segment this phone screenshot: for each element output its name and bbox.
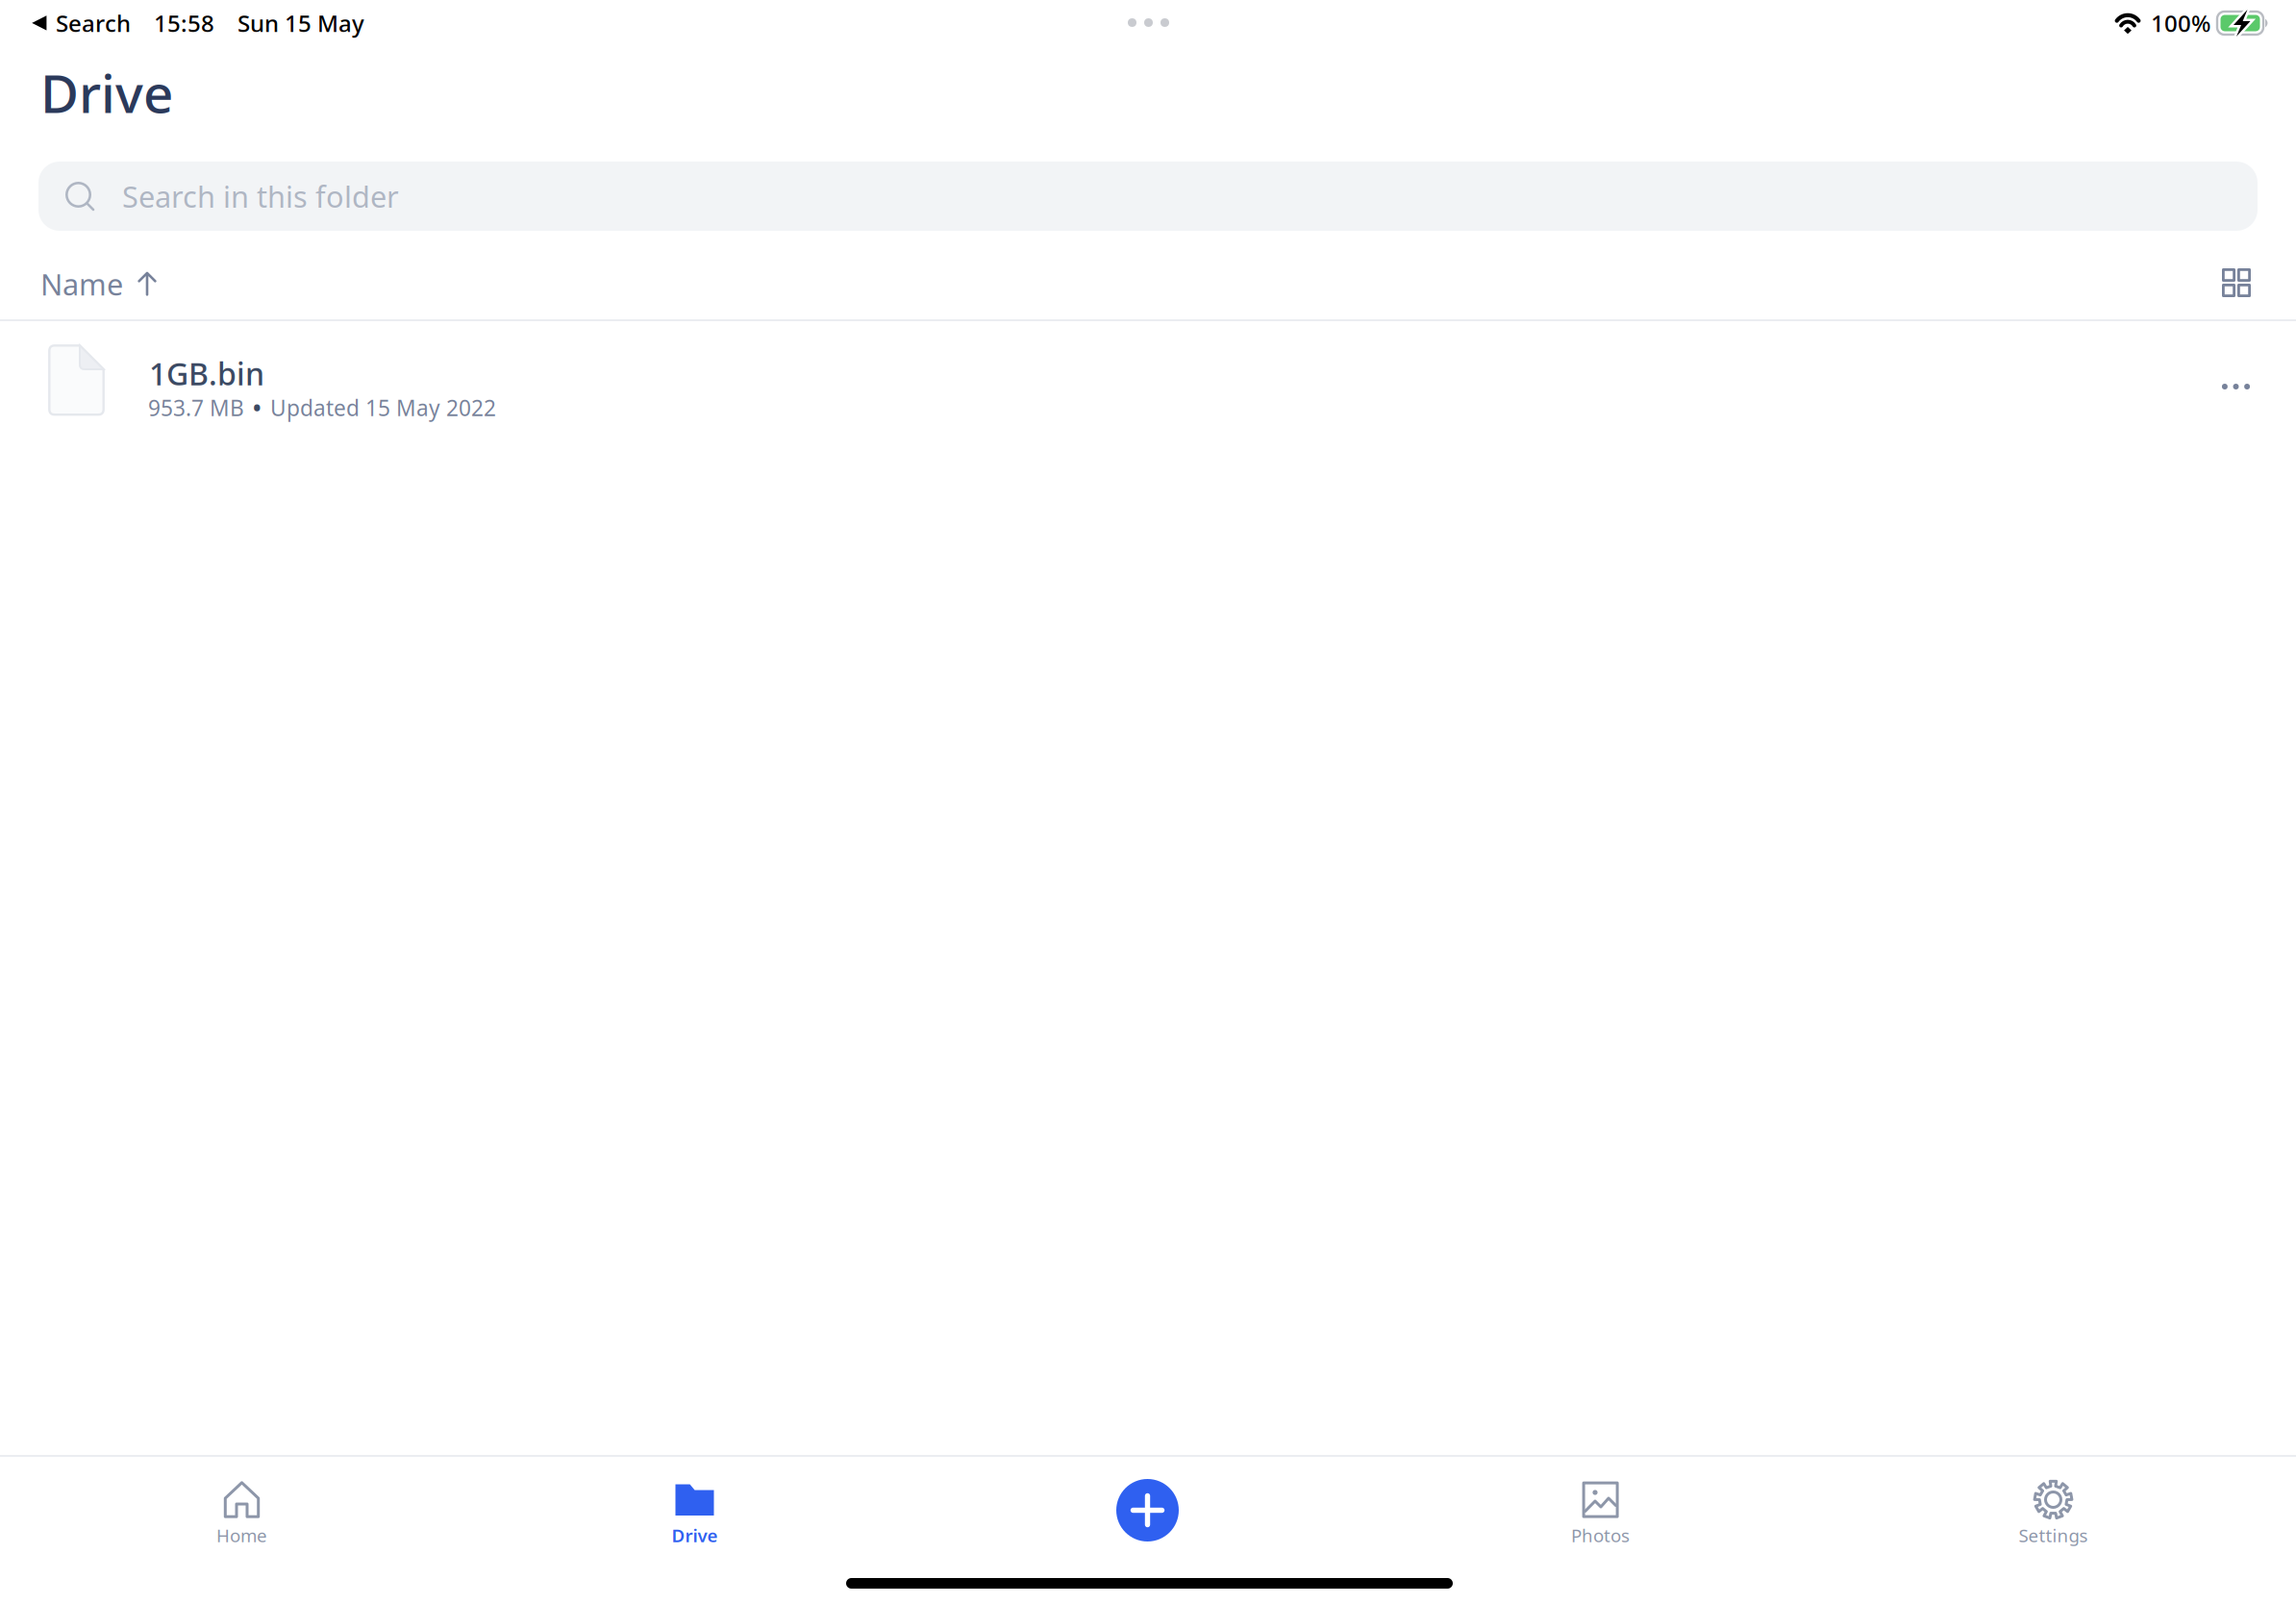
button[interactable]: Drive (468, 1474, 921, 1555)
staticText: • (253, 393, 262, 422)
button[interactable]: Grid view (2205, 251, 2268, 314)
staticText: Drive (672, 1523, 718, 1547)
button[interactable]: More actions for 1GB.bin (2203, 353, 2269, 420)
staticText: Updated 15 May 2022 (270, 393, 496, 422)
button[interactable]: Search in this folder (38, 162, 2258, 231)
staticText: Name (40, 264, 123, 304)
button[interactable]: Search (32, 11, 131, 36)
button[interactable]: Settings (1827, 1474, 2280, 1555)
button[interactable]: Name (23, 253, 174, 315)
staticText: Sun 15 May (237, 8, 364, 38)
staticText: 953.7 MB (148, 393, 244, 422)
button[interactable]: Create (921, 1474, 1374, 1555)
staticText: 15:58 (154, 8, 214, 38)
button[interactable]: 1GB.bin (0, 321, 2296, 427)
staticText: Drive (40, 58, 173, 128)
staticText: Settings (2019, 1523, 2088, 1547)
button[interactable]: Home (15, 1474, 468, 1555)
staticText: Home (216, 1523, 267, 1547)
button[interactable]: Photos (1374, 1474, 1827, 1555)
staticText: Search (56, 8, 131, 38)
staticText: 100% (2151, 8, 2210, 38)
staticText: 1GB.bin (149, 353, 264, 394)
staticText: Search in this folder (122, 177, 399, 216)
staticText: Photos (1571, 1523, 1630, 1547)
